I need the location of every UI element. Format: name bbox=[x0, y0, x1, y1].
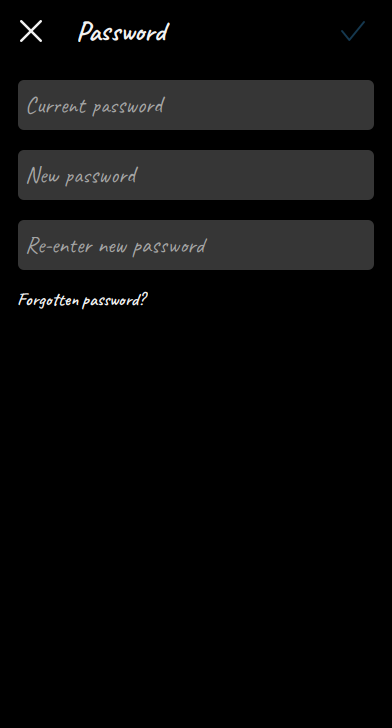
button[interactable]: New password bbox=[18, 150, 374, 200]
staticText: New password bbox=[25, 161, 135, 189]
button[interactable]: Close bbox=[9, 9, 53, 53]
staticText: Password bbox=[76, 13, 165, 49]
button[interactable]: Re-enter new password bbox=[18, 220, 374, 270]
staticText: Current password bbox=[25, 91, 162, 119]
button[interactable]: Save bbox=[331, 9, 375, 53]
button[interactable]: Current password bbox=[18, 80, 374, 130]
staticText: Forgotten password? bbox=[17, 288, 145, 311]
button[interactable]: Forgotten password? bbox=[17, 288, 145, 311]
staticText: Re-enter new password bbox=[25, 231, 204, 259]
